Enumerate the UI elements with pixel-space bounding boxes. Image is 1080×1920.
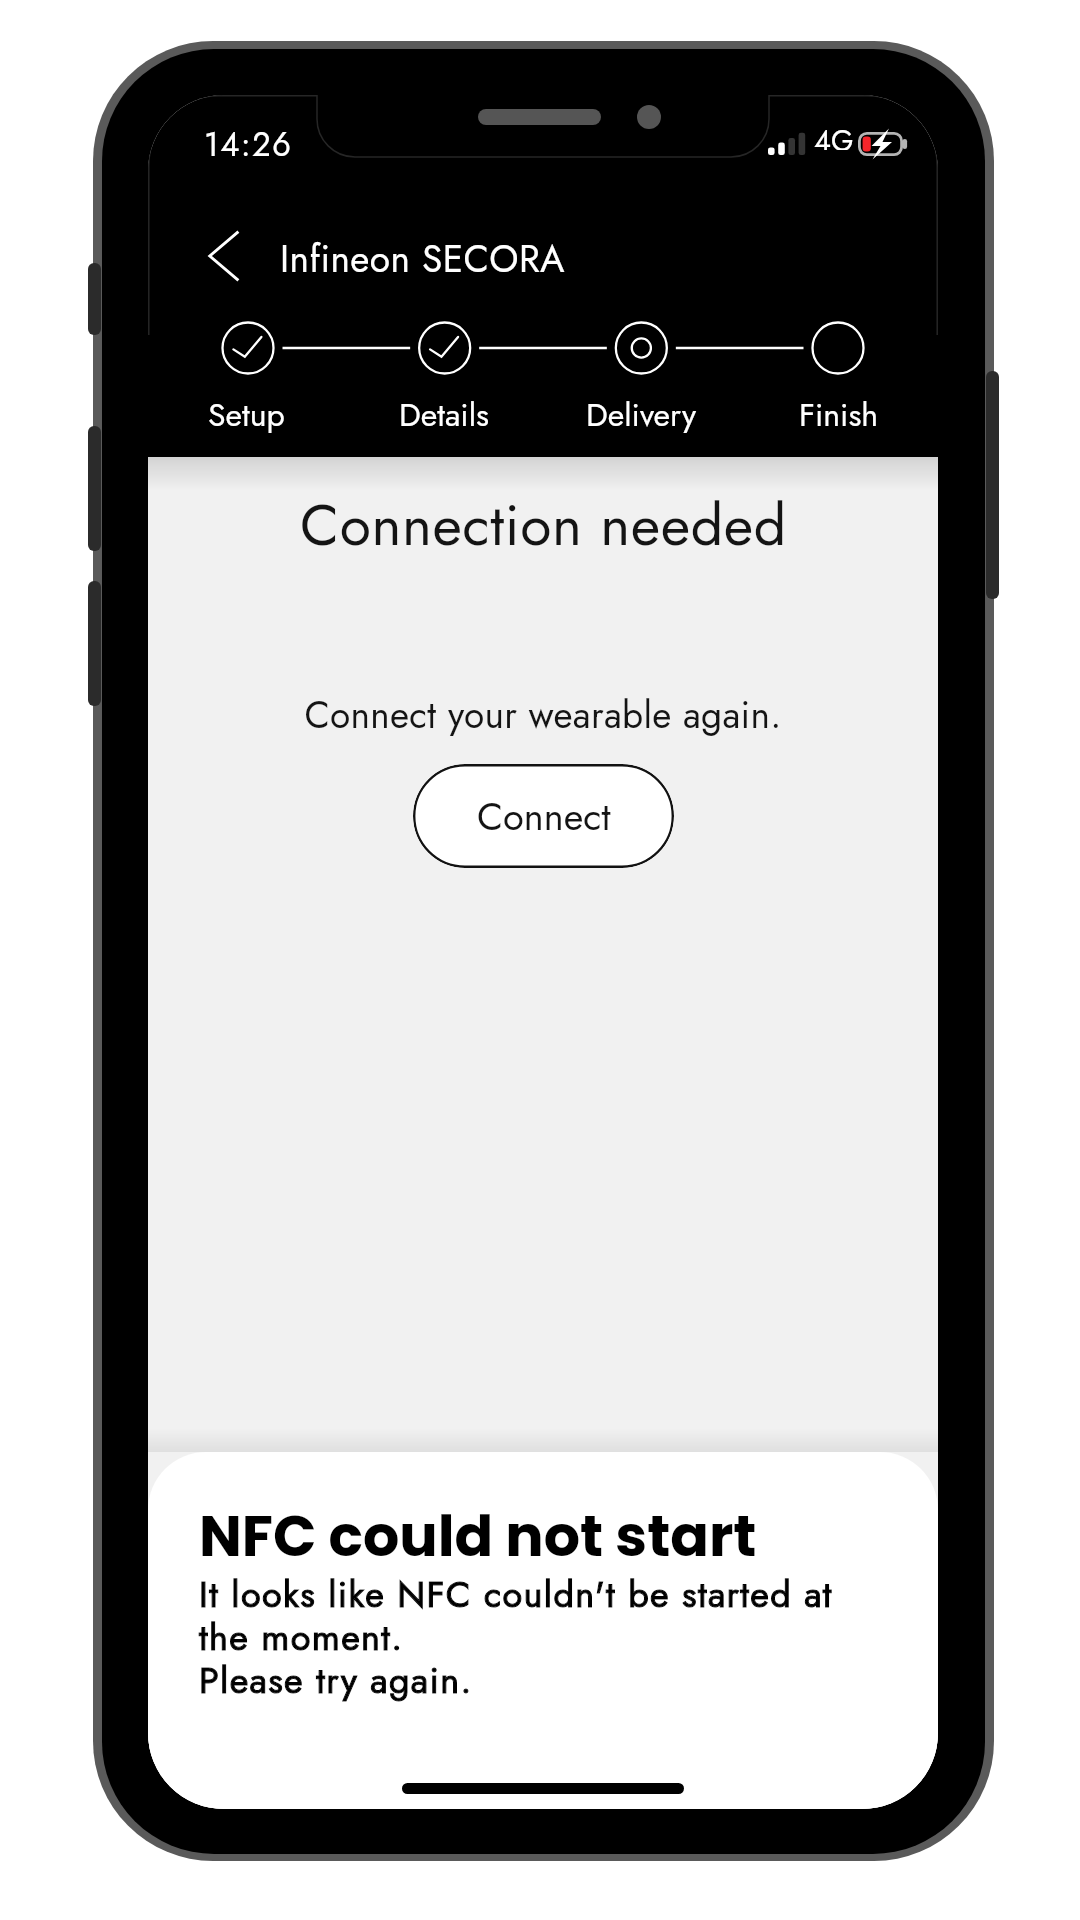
staticText: It looks like NFC couldn't be started at… (199, 1568, 833, 1706)
staticText: 4G (814, 120, 854, 150)
staticText: Connect your wearable again. (304, 688, 782, 741)
staticText: 14:26 (204, 121, 293, 169)
staticText: Connect (477, 789, 611, 844)
staticText: Details (399, 392, 489, 438)
staticText: It looks like NFC couldn't be started at… (199, 1568, 833, 1706)
button[interactable]: Details (345, 392, 542, 438)
button[interactable]: Setup (148, 392, 345, 438)
button[interactable]: Delivery (542, 392, 740, 438)
staticText: Delivery (586, 392, 697, 438)
staticText: Setup (208, 392, 285, 438)
staticText: Finish (799, 392, 879, 438)
button[interactable]: Finish (740, 392, 938, 438)
button[interactable]: Connect (413, 764, 674, 868)
staticText: Infineon SECORA (280, 232, 565, 285)
button[interactable]: Back (189, 221, 259, 291)
staticText: Connection needed (300, 484, 787, 566)
staticText: NFC could not start (199, 1496, 757, 1576)
